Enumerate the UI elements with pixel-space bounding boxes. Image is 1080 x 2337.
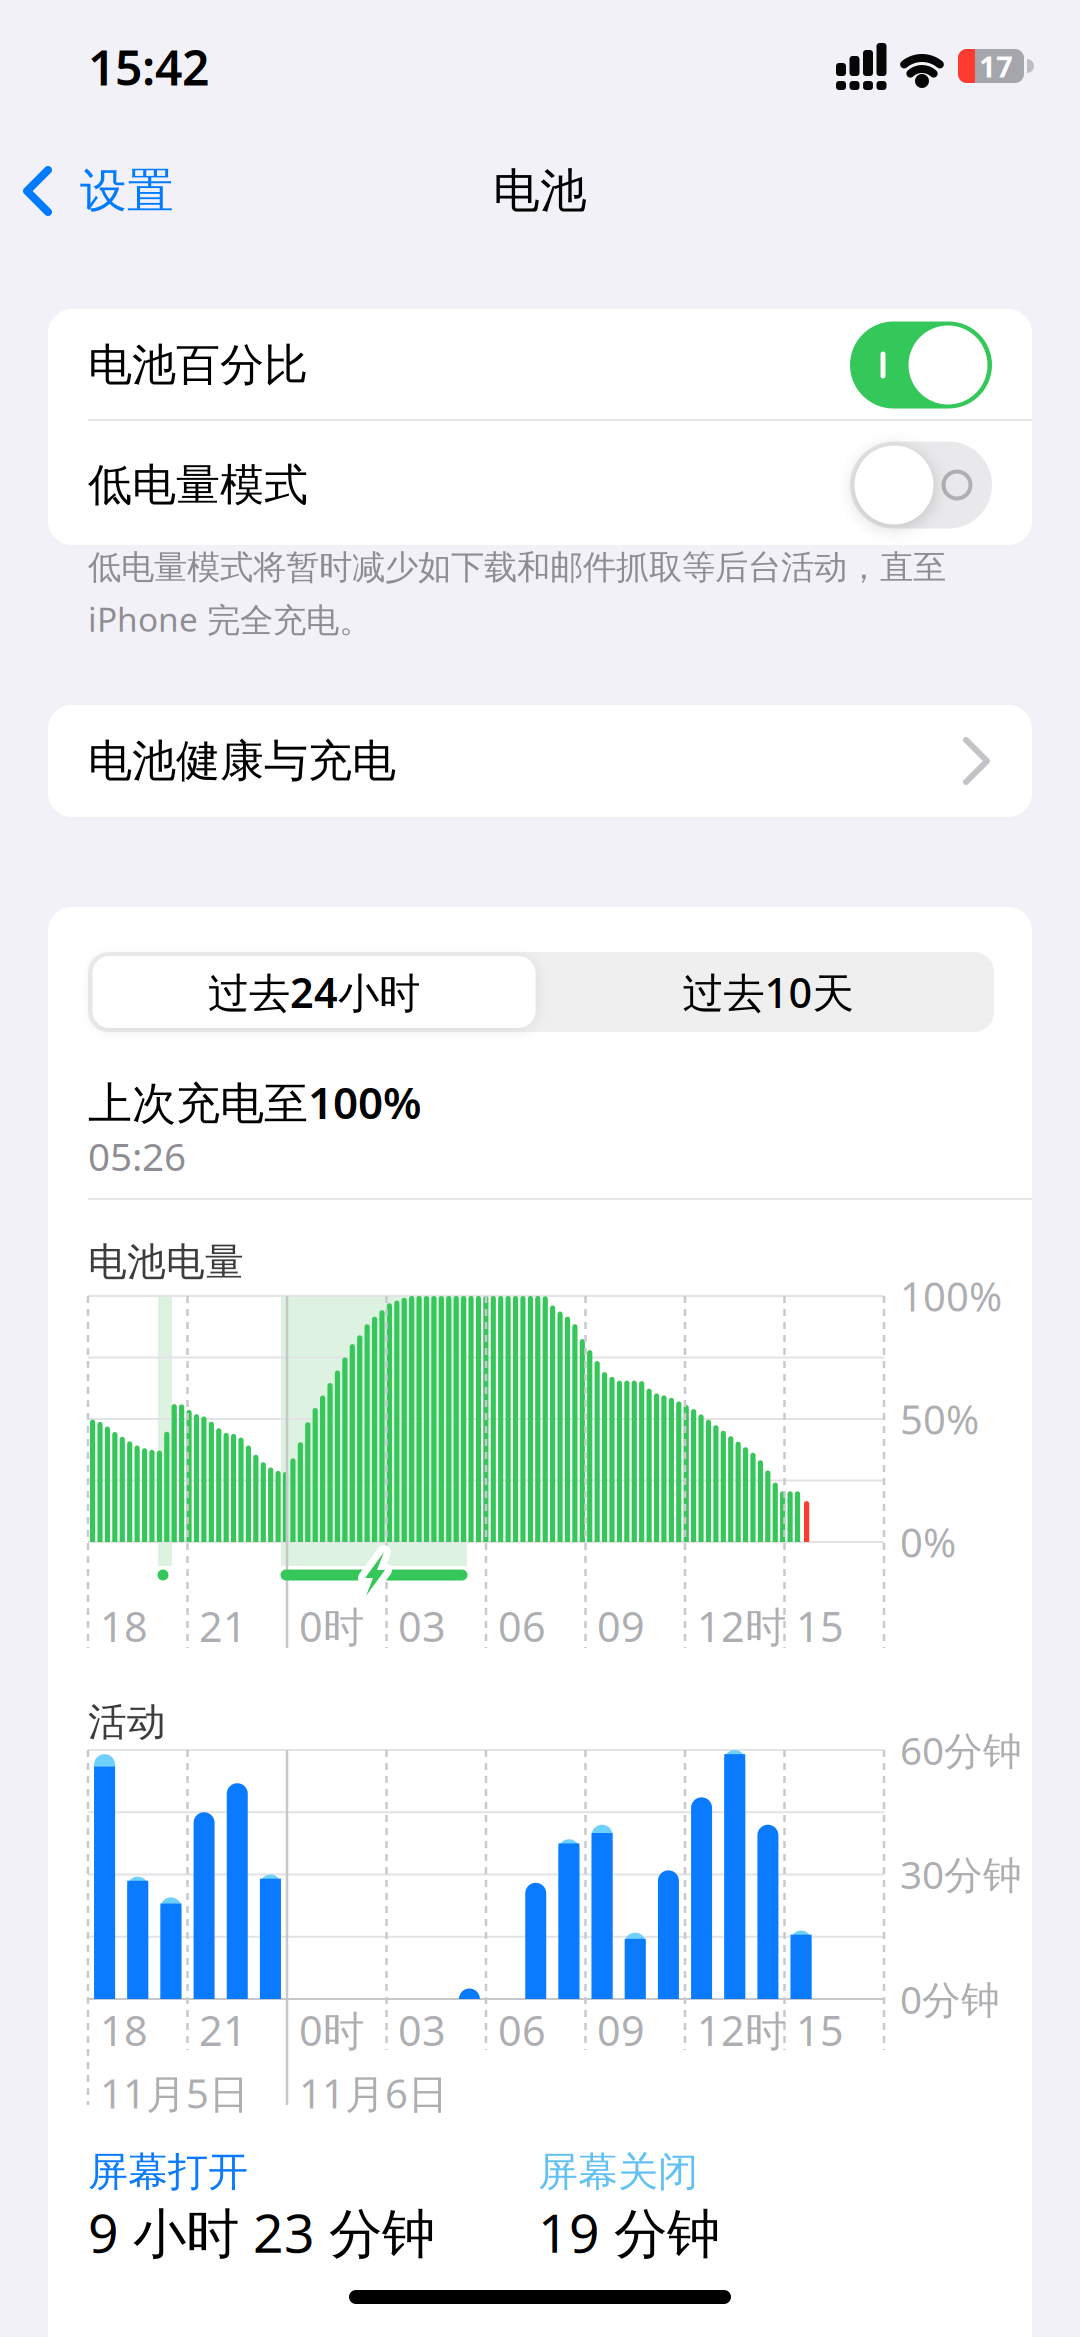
- staticText: 60分钟: [900, 1724, 1022, 1776]
- staticText: 18: [100, 1599, 148, 1653]
- staticText: 电池健康与充电: [88, 734, 396, 788]
- staticText: 15: [796, 1599, 844, 1653]
- staticText: 低电量模式将暂时减少如下载和邮件抓取等后台活动，直至: [88, 547, 946, 588]
- staticText: 12时: [697, 1599, 786, 1653]
- button[interactable]: 低电量模式: [48, 429, 1032, 541]
- staticText: 11月6日: [299, 2066, 448, 2119]
- staticText: 17: [979, 46, 1013, 85]
- staticText: 电池: [493, 162, 587, 220]
- staticText: 电池百分比: [88, 338, 308, 392]
- button[interactable]: 电池健康与充电: [48, 705, 1032, 817]
- staticText: 过去24小时: [208, 965, 420, 1019]
- staticText: 0时: [299, 2003, 364, 2057]
- staticText: 屏幕打开: [88, 2147, 248, 2196]
- staticText: 09: [597, 1599, 645, 1653]
- staticText: 03: [398, 2003, 446, 2057]
- staticText: 过去10天: [682, 965, 853, 1019]
- staticText: 06: [498, 1599, 546, 1653]
- staticText: 30分钟: [900, 1848, 1022, 1900]
- staticText: 15: [796, 2003, 844, 2057]
- staticText: 0分钟: [900, 1973, 1000, 2025]
- staticText: 15:42: [88, 35, 209, 99]
- staticText: 11月5日: [100, 2066, 249, 2119]
- staticText: 0时: [299, 1599, 364, 1653]
- staticText: 设置: [80, 162, 174, 220]
- staticText: 50%: [900, 1392, 979, 1445]
- button[interactable]: 电池百分比: [48, 309, 1032, 421]
- staticText: 电池电量: [88, 1238, 244, 1286]
- staticText: 09: [597, 2003, 645, 2057]
- staticText: 低电量模式: [88, 458, 308, 512]
- staticText: 03: [398, 1599, 446, 1653]
- button[interactable]: 过去24小时: [92, 956, 535, 1028]
- staticText: 活动: [88, 1698, 166, 1746]
- staticText: 上次充电至100%: [88, 1073, 422, 1131]
- staticText: 05:26: [88, 1130, 186, 1182]
- button[interactable]: 过去10天: [546, 956, 989, 1028]
- staticText: 12时: [697, 2003, 786, 2057]
- staticText: iPhone 完全充电。: [88, 597, 372, 641]
- staticText: 屏幕关闭: [538, 2147, 698, 2196]
- staticText: 9 小时 23 分钟: [88, 2197, 435, 2267]
- staticText: 100%: [900, 1269, 1002, 1322]
- staticText: 18: [100, 2003, 148, 2057]
- staticText: 0%: [900, 1515, 956, 1568]
- button[interactable]: 返回设置: [24, 158, 194, 224]
- staticText: 19 分钟: [538, 2197, 720, 2267]
- staticText: 21: [199, 2003, 247, 2057]
- staticText: 06: [498, 2003, 546, 2057]
- staticText: 21: [199, 1599, 247, 1653]
